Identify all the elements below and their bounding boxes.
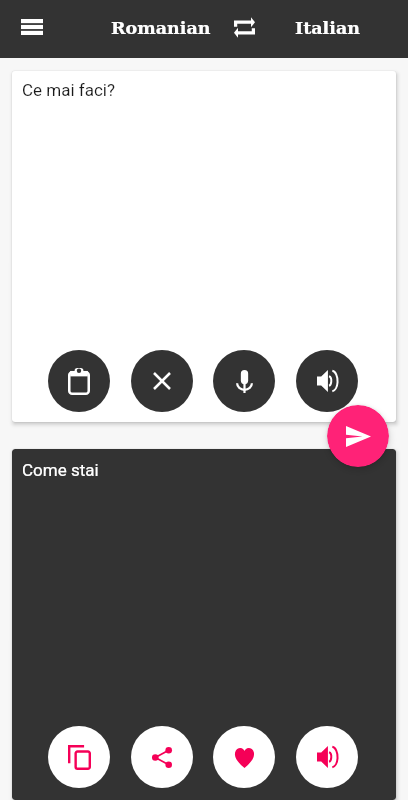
button[interactable]: Romanian: [101, 0, 221, 58]
button[interactable]: Menu: [3, 0, 61, 58]
button[interactable]: Speak: [296, 350, 358, 412]
button[interactable]: Clear: [131, 350, 193, 412]
staticText: Italian: [295, 18, 360, 39]
staticText: Come stai: [22, 460, 99, 480]
button[interactable]: Share: [131, 726, 193, 788]
staticText: Ce mai faci?: [22, 80, 116, 100]
button[interactable]: Swap languages: [222, 0, 266, 58]
button[interactable]: Italian: [282, 0, 372, 58]
button[interactable]: Translate: [327, 405, 389, 467]
button[interactable]: Favorite: [213, 726, 275, 788]
button[interactable]: Paste: [48, 350, 110, 412]
button[interactable]: Copy: [48, 726, 110, 788]
button[interactable]: Speak: [296, 726, 358, 788]
staticText: Romanian: [111, 18, 211, 39]
button[interactable]: Voice input: [213, 350, 275, 412]
